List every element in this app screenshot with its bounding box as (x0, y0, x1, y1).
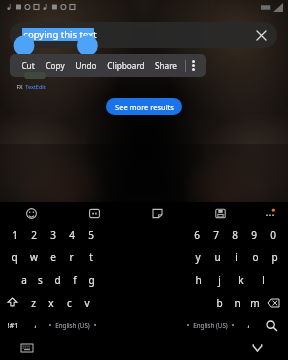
button[interactable]: Clipboard (102, 54, 150, 77)
staticText: r (69, 250, 74, 264)
staticText: 8 (232, 228, 238, 242)
staticText: copying this text (23, 28, 97, 41)
button[interactable]: j (209, 268, 230, 291)
staticText: c (67, 296, 72, 310)
button[interactable]: k (230, 268, 252, 291)
button[interactable]: 7 (206, 224, 225, 245)
button[interactable]: n (228, 291, 246, 314)
button[interactable]: See more results (106, 98, 182, 115)
button[interactable]: Clipboard (189, 202, 252, 224)
staticText: p (271, 250, 278, 264)
button[interactable]: Period (238, 314, 258, 336)
staticText: e (50, 250, 56, 264)
button[interactable]: y (188, 245, 208, 268)
staticText: v (84, 296, 90, 310)
button[interactable]: Sticker (126, 202, 189, 224)
button[interactable]: Symbols (0, 314, 26, 336)
button[interactable]: h (188, 268, 209, 291)
staticText: Undo (75, 60, 97, 71)
button[interactable]: 0 (263, 224, 282, 245)
staticText: u (214, 250, 221, 264)
button[interactable]: 3 (43, 224, 62, 245)
staticText: d (54, 273, 61, 287)
button[interactable]: q (4, 245, 24, 268)
button[interactable]: 2 (24, 224, 43, 245)
staticText: 9 (251, 228, 257, 242)
staticText: 6 (194, 228, 200, 242)
button[interactable]: s (32, 268, 49, 291)
staticText: y (195, 250, 201, 264)
button[interactable]: More (252, 202, 288, 224)
staticText: x (48, 296, 54, 310)
button[interactable]: Shift (0, 291, 24, 314)
button[interactable]: Emoji (0, 202, 63, 224)
button[interactable]: a (16, 268, 32, 291)
button[interactable]: b (210, 291, 228, 314)
button[interactable]: 4 (62, 224, 81, 245)
button[interactable]: Switch keyboard (18, 339, 36, 357)
button[interactable]: c (60, 291, 78, 314)
button[interactable]: 6 (188, 224, 206, 245)
button[interactable]: x (42, 291, 60, 314)
staticText: !#1 (7, 320, 19, 330)
button[interactable]: 5 (81, 224, 100, 245)
button[interactable]: Undo (70, 54, 102, 77)
staticText: k (238, 273, 244, 287)
button[interactable]: e (43, 245, 62, 268)
staticText: t (89, 250, 93, 264)
button[interactable]: 9 (244, 224, 263, 245)
button[interactable]: r (62, 245, 81, 268)
button[interactable]: copying this text (10, 22, 277, 48)
button[interactable]: m (246, 291, 264, 314)
button[interactable]: u (208, 245, 227, 268)
staticText: i (235, 250, 238, 264)
staticText: m (250, 296, 260, 310)
staticText: 5 (88, 228, 94, 242)
button[interactable]: Search (258, 314, 284, 336)
staticText: , (34, 318, 37, 329)
button[interactable]: d (49, 268, 66, 291)
button[interactable]: Hide keyboard (248, 339, 266, 357)
staticText: f (73, 273, 77, 287)
button[interactable]: l (252, 268, 274, 291)
button[interactable]: More options (186, 54, 200, 77)
button[interactable]: Backspace (264, 291, 282, 314)
button[interactable]: Share (150, 54, 182, 77)
staticText: Cut (21, 60, 35, 71)
button[interactable]: Space (44, 314, 100, 336)
staticText: j (218, 273, 221, 287)
staticText: TextEdit (25, 83, 46, 90)
staticText: Share (155, 60, 177, 71)
button[interactable]: 1 (6, 224, 24, 245)
button[interactable]: Close (251, 25, 271, 45)
staticText: , (247, 318, 250, 329)
button[interactable]: f (66, 268, 83, 291)
staticText: l (262, 273, 265, 287)
staticText: 0 (270, 228, 276, 242)
staticText: n (234, 296, 241, 310)
button[interactable]: z (24, 291, 42, 314)
button[interactable]: i (227, 245, 246, 268)
button[interactable]: Copy (40, 54, 70, 77)
staticText: q (11, 250, 18, 264)
button[interactable]: GIF (63, 202, 126, 224)
button[interactable]: Space right (182, 314, 238, 336)
button[interactable]: p (265, 245, 284, 268)
staticText: 4 (69, 228, 75, 242)
button[interactable]: o (246, 245, 265, 268)
button[interactable]: w (24, 245, 43, 268)
button[interactable]: t (81, 245, 100, 268)
staticText: s (38, 273, 43, 287)
button[interactable]: g (83, 268, 100, 291)
staticText: 3 (50, 228, 56, 242)
button[interactable]: v (78, 291, 96, 314)
staticText: b (216, 296, 223, 310)
button[interactable]: Cut (16, 54, 40, 77)
button[interactable]: Comma (26, 314, 44, 336)
button[interactable]: 8 (225, 224, 244, 245)
staticText: g (88, 273, 95, 287)
staticText: English (US) (55, 321, 90, 329)
staticText: Copy (45, 60, 65, 71)
staticText: z (31, 296, 36, 310)
staticText: h (195, 273, 202, 287)
